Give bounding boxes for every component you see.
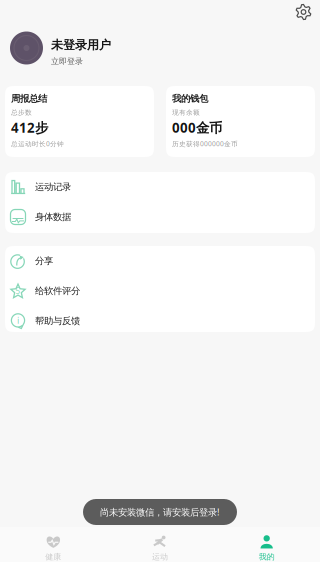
staticText: 健康 <box>45 552 61 562</box>
button[interactable]: 分享 <box>5 246 315 276</box>
button[interactable]: 我的钱包 <box>166 86 315 157</box>
staticText: 412步 <box>11 119 48 136</box>
staticText: 我的钱包 <box>172 93 208 104</box>
staticText: 给软件评分 <box>35 285 80 297</box>
staticText: 5 <box>15 286 20 296</box>
staticText: 帮助与反馈 <box>35 315 80 327</box>
button[interactable]: 运动记录 <box>5 172 315 202</box>
staticText: 身体数据 <box>35 211 71 223</box>
staticText: 总运动时长0分钟 <box>11 139 64 148</box>
button[interactable]: 我的 <box>213 527 320 562</box>
staticText: 尚未安装微信，请安装后登录! <box>100 506 220 518</box>
button[interactable]: 运动 <box>107 527 213 562</box>
staticText: 现有余额 <box>172 108 200 117</box>
button[interactable]: 未登录用户 <box>0 24 320 68</box>
button[interactable]: 健康 <box>0 527 107 562</box>
button[interactable]: 周报总结 <box>5 86 154 157</box>
button[interactable]: i <box>5 306 315 336</box>
staticText: 未登录用户 <box>51 38 111 52</box>
staticText: 立即登录 <box>51 56 83 66</box>
staticText: 运动 <box>152 552 168 562</box>
staticText: i <box>17 314 19 326</box>
staticText: 总步数 <box>11 108 32 117</box>
staticText: 我的 <box>259 552 275 562</box>
staticText: 历史获得000000金币 <box>172 139 238 148</box>
button[interactable]: 5 <box>5 276 315 306</box>
staticText: 分享 <box>35 255 53 267</box>
staticText: 运动记录 <box>35 181 71 193</box>
button[interactable]: 身体数据 <box>5 202 315 232</box>
staticText: 000金币 <box>172 119 222 136</box>
button[interactable]: Settings <box>292 0 315 23</box>
staticText: 周报总结 <box>11 93 47 104</box>
